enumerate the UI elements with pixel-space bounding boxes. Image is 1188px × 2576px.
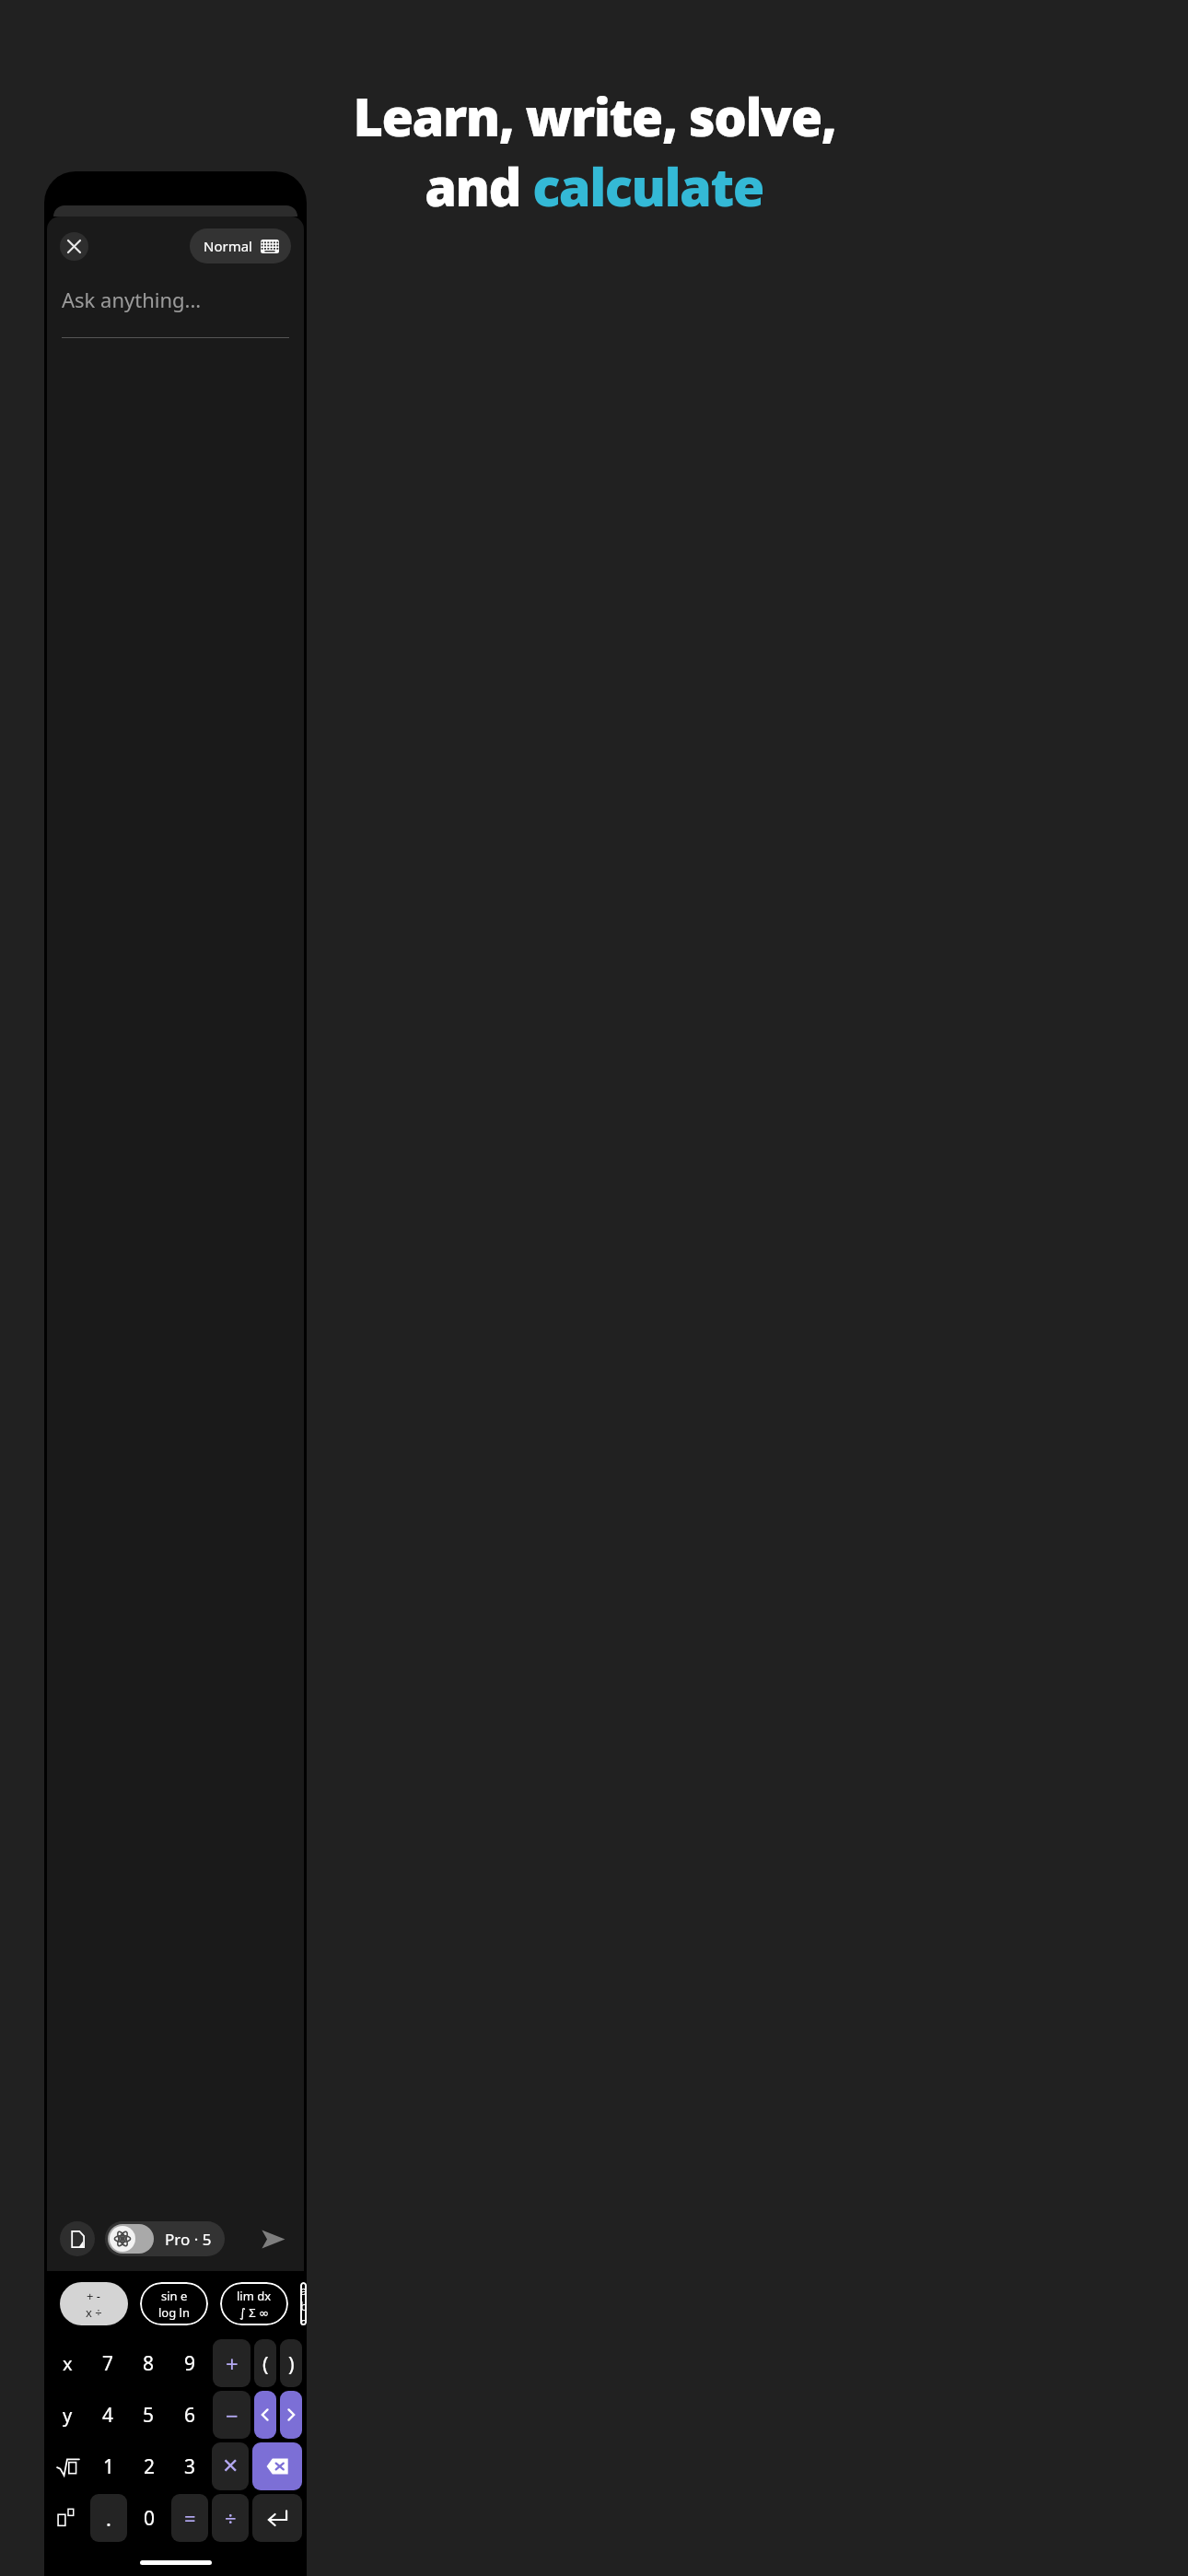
button[interactable]: 9 (171, 2339, 209, 2387)
button[interactable]: Send (256, 2222, 289, 2255)
button[interactable]: abc (300, 2282, 307, 2325)
staticText: 7 (102, 2350, 114, 2377)
button[interactable]: 6 (171, 2391, 209, 2439)
button[interactable]: 4 (89, 2391, 126, 2439)
button[interactable]: − (213, 2391, 250, 2439)
button[interactable]: ✕ (212, 2442, 249, 2490)
button[interactable]: 8 (130, 2339, 168, 2387)
staticText: 0 (144, 2505, 156, 2532)
staticText: lim dx (237, 2288, 272, 2304)
staticText: = (184, 2504, 196, 2532)
staticText: sin e (161, 2288, 188, 2304)
staticText: Learn, write, solve, (353, 81, 836, 151)
staticText: ✕ (222, 2454, 239, 2478)
button[interactable]: 1 (90, 2442, 127, 2490)
button[interactable]: 0 (131, 2494, 168, 2542)
staticText: 8 (143, 2350, 155, 2377)
staticText: 1 (103, 2453, 115, 2480)
button[interactable]: Enter (252, 2494, 302, 2542)
staticText: 5 (143, 2402, 155, 2429)
button[interactable]: Move right (280, 2391, 302, 2439)
button[interactable]: 2 (131, 2442, 168, 2490)
button[interactable]: 5 (130, 2391, 168, 2439)
button[interactable]: x (49, 2339, 86, 2387)
button[interactable]: Attach document (60, 2221, 95, 2256)
staticText: y (63, 2403, 73, 2428)
staticText: abc (300, 2282, 307, 2325)
staticText: − (226, 2400, 239, 2430)
staticText: and calculate (425, 151, 763, 221)
staticText: ∫ Σ ∞ (239, 2304, 269, 2321)
button[interactable]: lim dx (220, 2282, 288, 2325)
button[interactable]: + (213, 2339, 250, 2387)
button[interactable]: Close (60, 232, 88, 261)
button[interactable]: y (49, 2391, 86, 2439)
staticText: x (63, 2351, 73, 2376)
staticText: + - (87, 2288, 101, 2304)
button[interactable]: Pro · 5 (105, 2221, 225, 2256)
button[interactable]: Backspace (252, 2442, 302, 2490)
staticText: 4 (102, 2402, 114, 2429)
button[interactable]: 7 (89, 2339, 126, 2387)
staticText: ) (288, 2349, 295, 2377)
button[interactable]: Move left (254, 2391, 276, 2439)
staticText: ( (262, 2349, 269, 2377)
button[interactable]: Power (49, 2494, 87, 2542)
staticText: Ask anything... (62, 286, 202, 313)
staticText: log ln (158, 2304, 190, 2321)
button[interactable]: sin e (140, 2282, 208, 2325)
button[interactable]: ) (280, 2339, 302, 2387)
button[interactable]: ÷ (212, 2494, 249, 2542)
staticText: . (106, 2504, 111, 2532)
button[interactable]: Square root (49, 2442, 87, 2490)
staticText: 3 (184, 2453, 196, 2480)
staticText: 2 (144, 2453, 156, 2480)
staticText: x ÷ (86, 2304, 102, 2321)
button[interactable]: Normal (190, 228, 291, 263)
button[interactable]: . (90, 2494, 127, 2542)
button[interactable]: + - (60, 2282, 128, 2325)
staticText: ÷ (225, 2504, 237, 2532)
staticText: 9 (184, 2350, 196, 2377)
staticText: + (226, 2348, 239, 2379)
button[interactable]: 3 (171, 2442, 208, 2490)
button[interactable]: ( (254, 2339, 276, 2387)
button[interactable]: = (171, 2494, 208, 2542)
staticText: 6 (184, 2402, 196, 2429)
staticText: Pro · 5 (165, 2229, 212, 2250)
staticText: Normal (204, 237, 252, 255)
